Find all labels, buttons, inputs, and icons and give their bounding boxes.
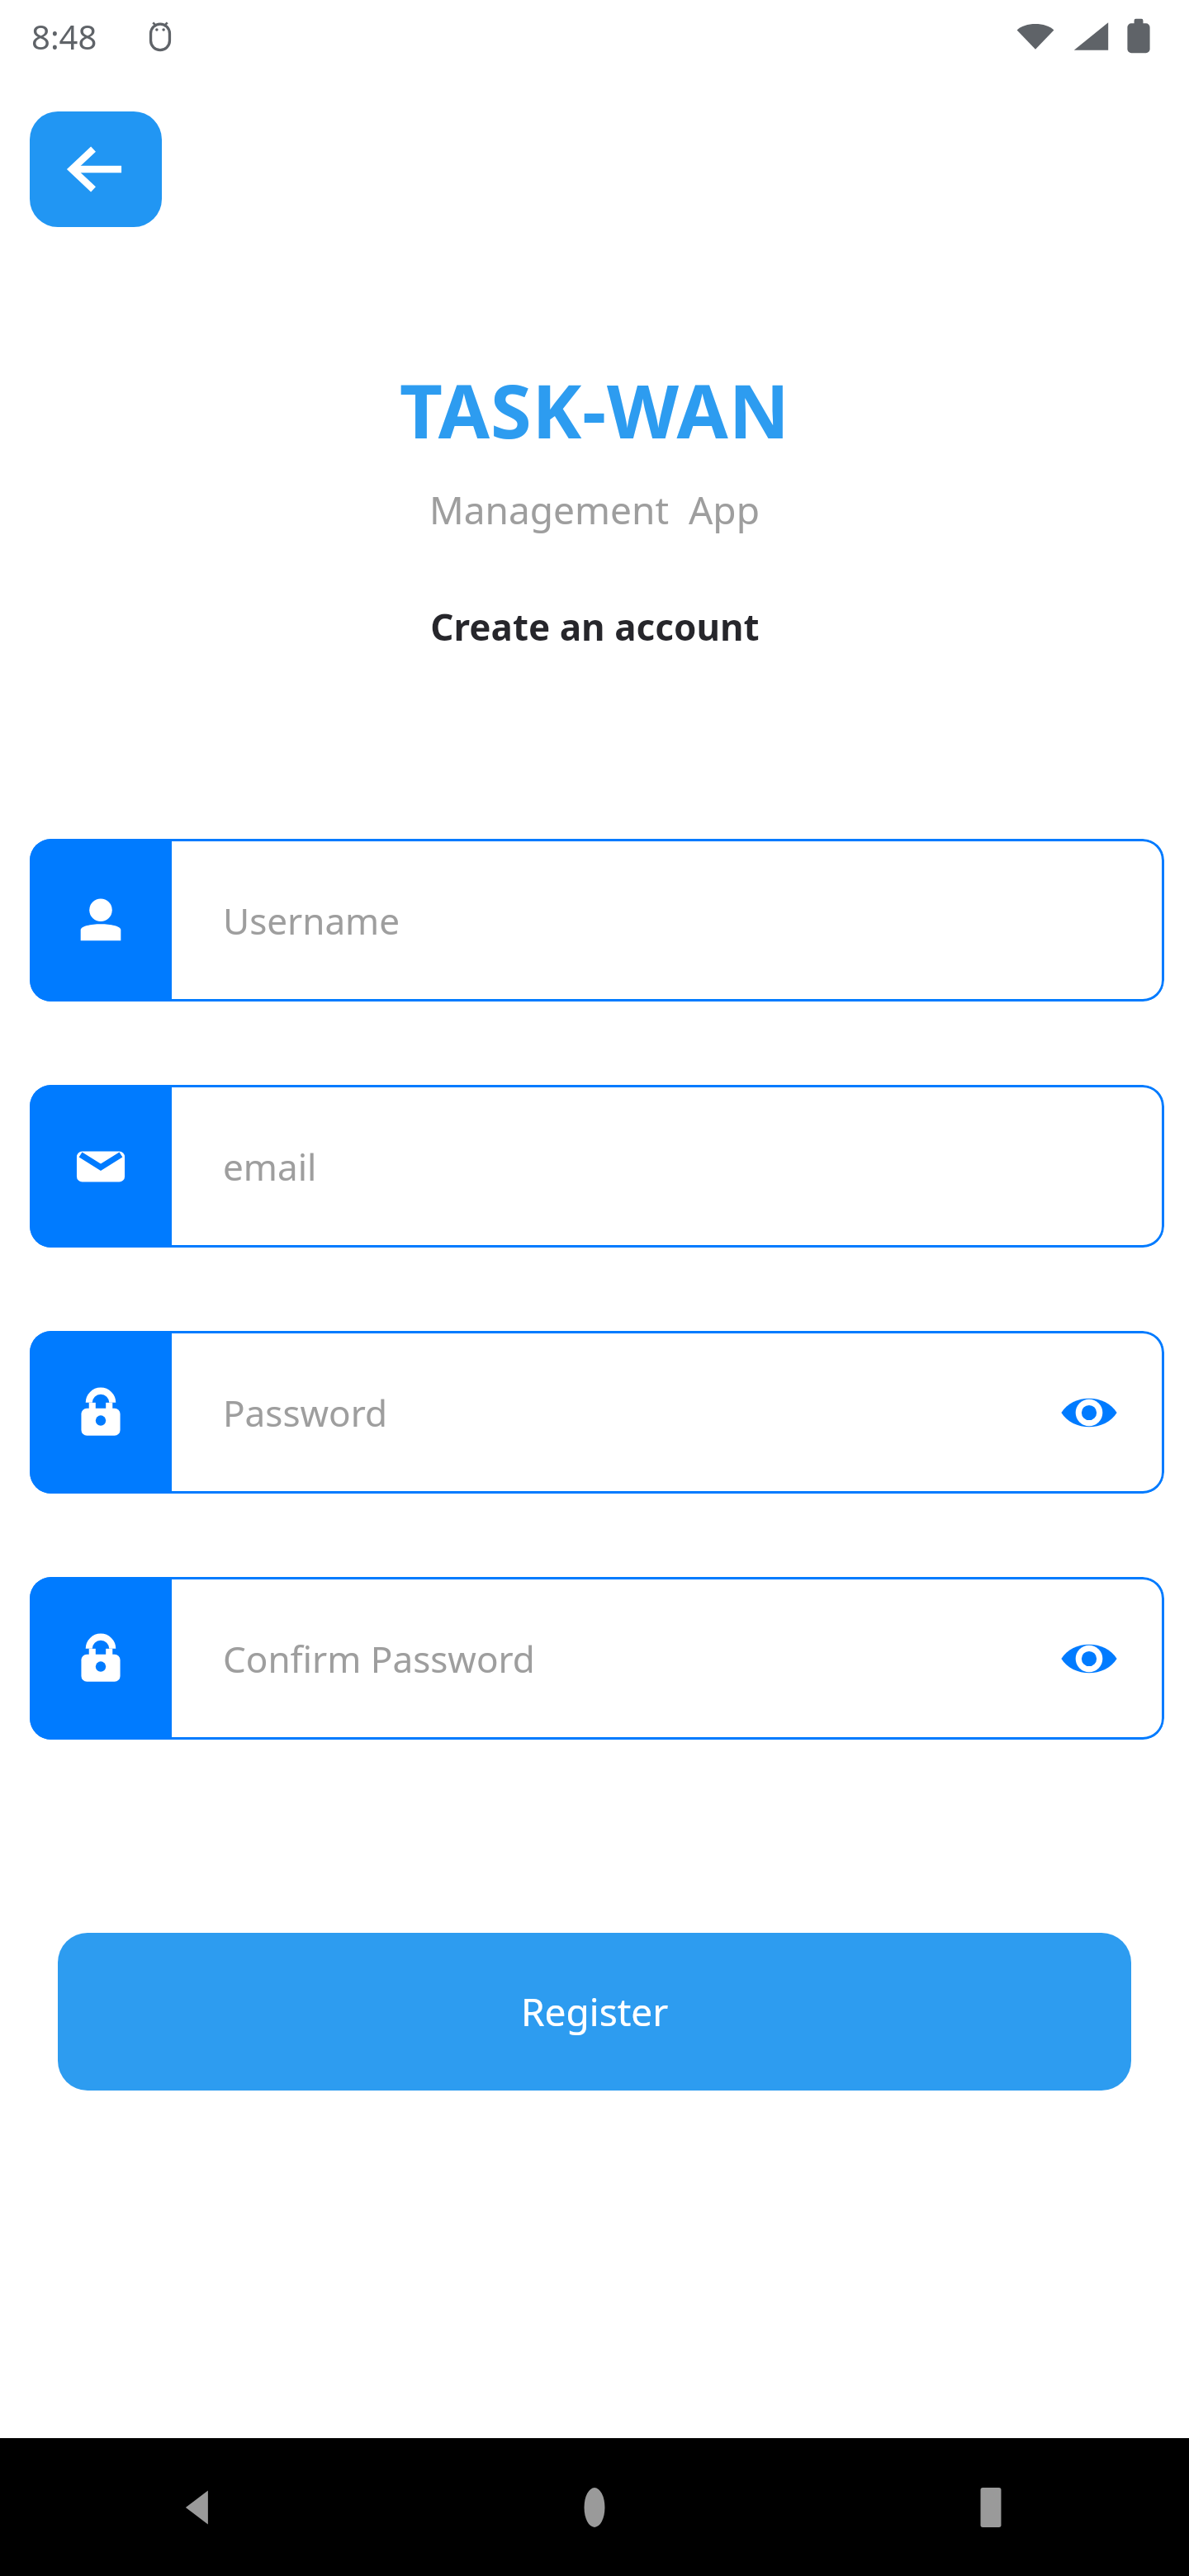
staticText: Create an account — [430, 602, 760, 651]
staticText: Management App — [429, 484, 760, 536]
button[interactable]: Back — [30, 111, 162, 227]
button[interactable]: Recent apps — [793, 2438, 1189, 2576]
staticText: Username — [223, 896, 400, 945]
button[interactable]: Username — [30, 839, 1164, 1002]
staticText: Password — [223, 1388, 388, 1437]
button[interactable]: Register — [58, 1933, 1131, 2091]
button[interactable]: email — [30, 1085, 1164, 1248]
staticText: TASK-WAN — [400, 359, 790, 461]
button[interactable]: Back — [0, 2438, 396, 2576]
staticText: Confirm Password — [223, 1634, 535, 1683]
button[interactable]: Password — [30, 1331, 1164, 1494]
staticText: Register — [521, 1986, 669, 2038]
button[interactable]: Show password — [1052, 1622, 1126, 1696]
button[interactable]: Home — [396, 2438, 793, 2576]
staticText: email — [223, 1142, 317, 1191]
button[interactable]: Confirm Password — [30, 1577, 1164, 1740]
button[interactable]: Show password — [1052, 1376, 1126, 1450]
staticText: 8:48 — [31, 14, 97, 59]
